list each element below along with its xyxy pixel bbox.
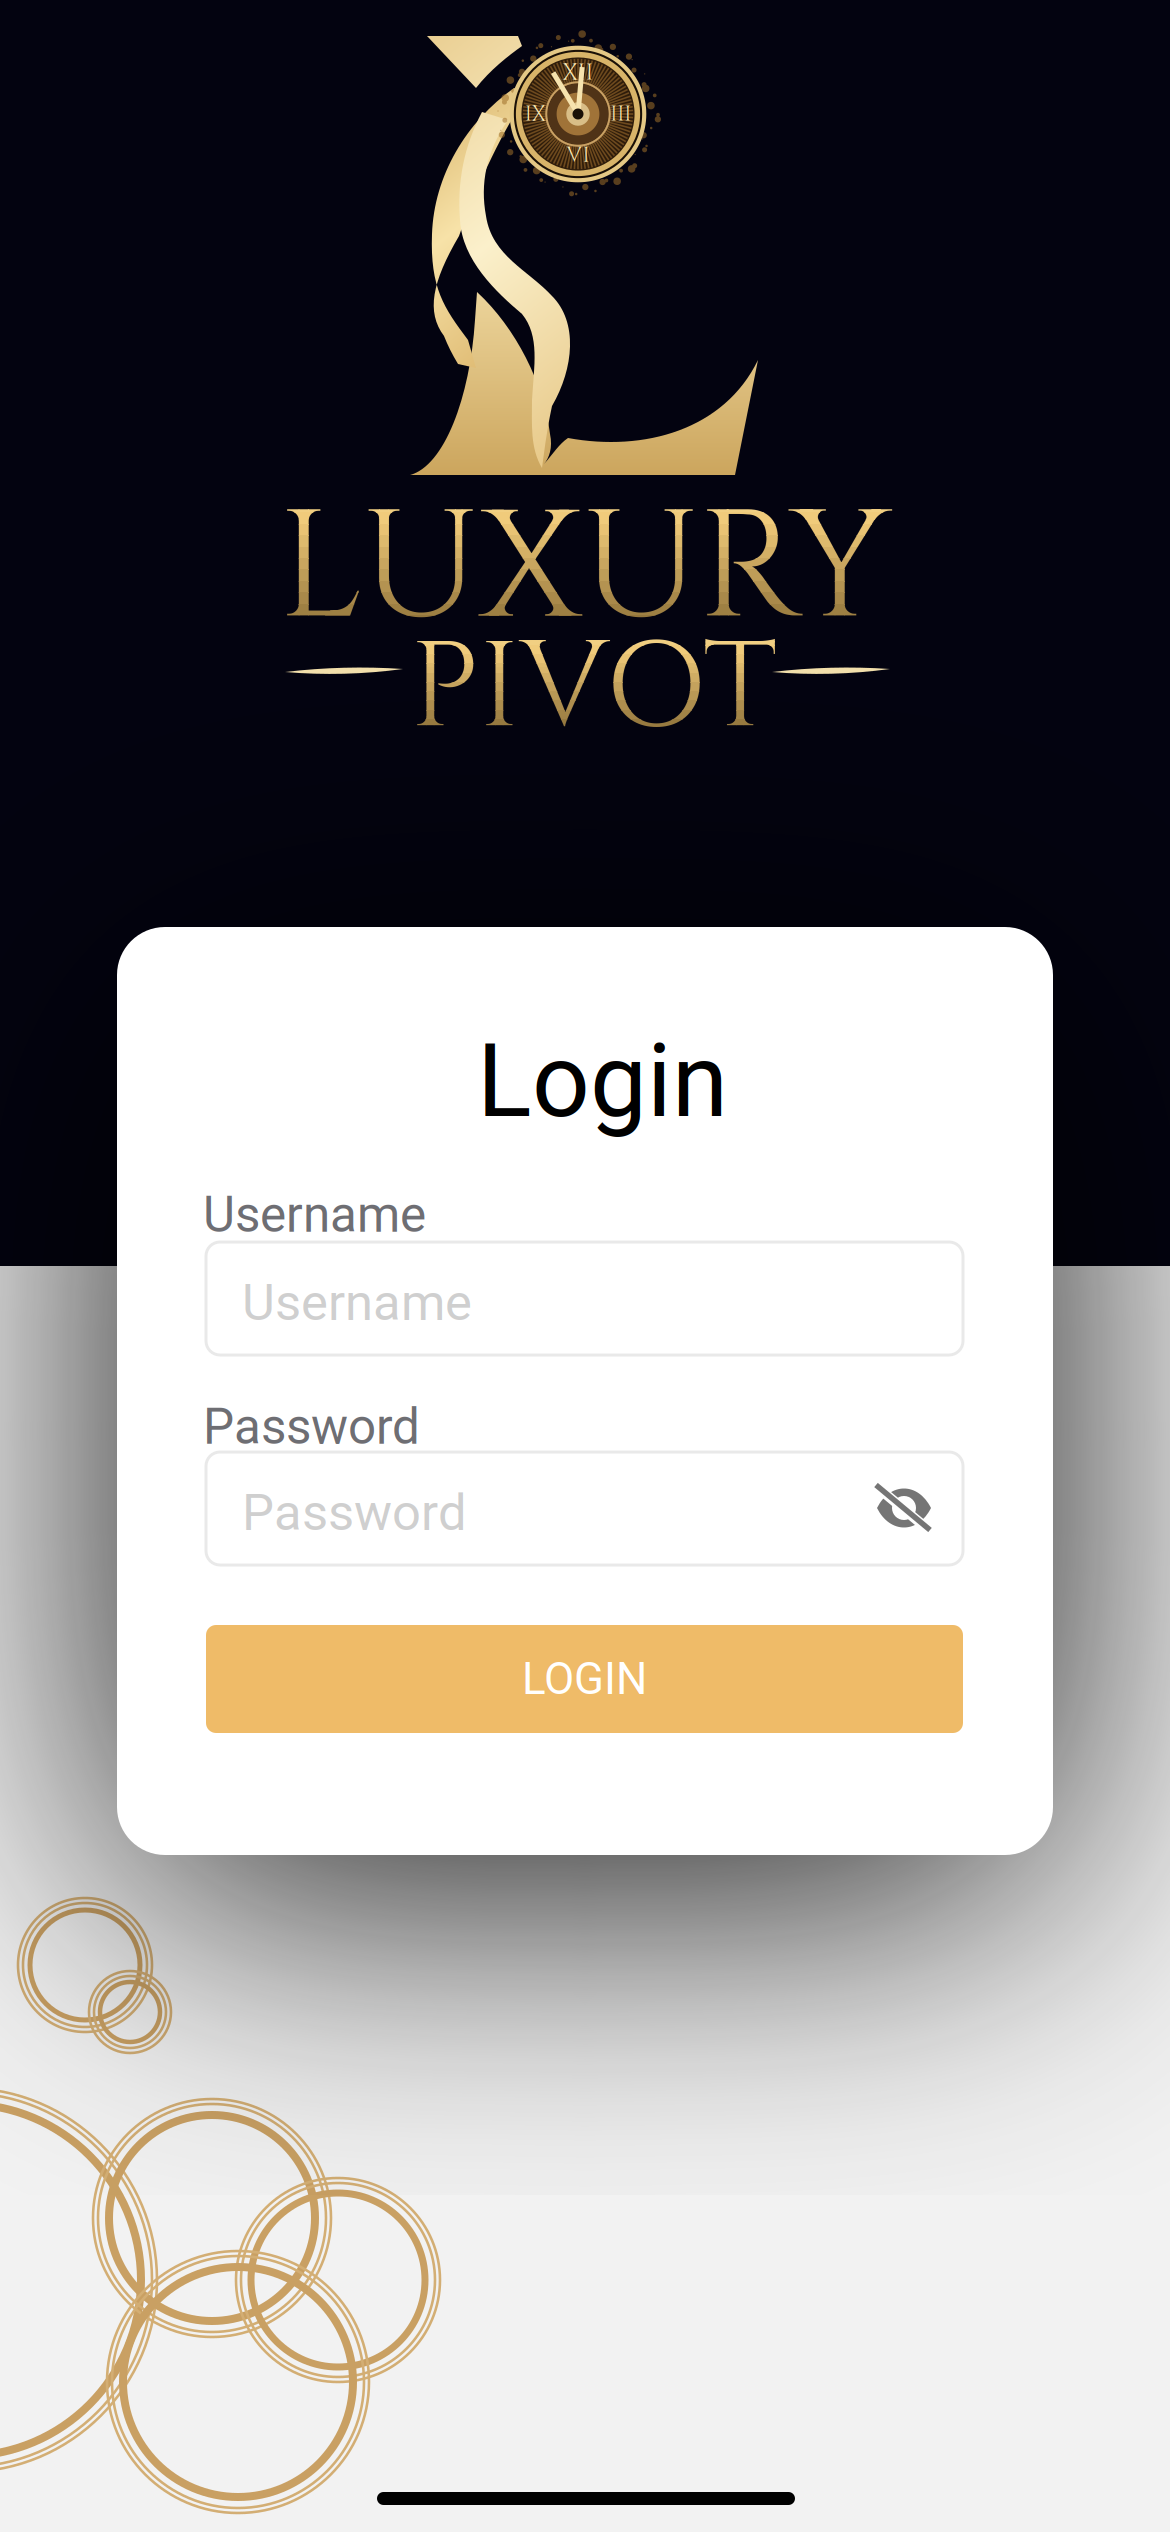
staticText: VI: [566, 141, 589, 170]
staticText: LUXURY: [278, 467, 890, 672]
staticText: III: [610, 100, 631, 128]
staticText: LUXURY: [278, 467, 890, 672]
staticText: LUXURY: [278, 467, 890, 672]
staticText: LUXURY: [278, 467, 890, 672]
staticText: PIVOT: [410, 608, 777, 770]
staticText: LUXURY: [278, 467, 890, 672]
staticText: LUXURY: [278, 467, 890, 672]
staticText: LUXURY: [278, 467, 890, 672]
staticText: Login: [477, 1022, 728, 1141]
staticText: LUXURY: [278, 467, 890, 672]
staticText: LUXURY: [278, 467, 890, 672]
staticText: LOGIN: [522, 1653, 647, 1705]
staticText: PIVOT: [410, 608, 777, 770]
staticText: LUXURY: [278, 467, 890, 672]
staticText: LUXURY: [278, 467, 890, 672]
staticText: PIVOT: [410, 608, 777, 770]
staticText: XII: [562, 57, 593, 88]
staticText: LUXURY: [278, 467, 890, 672]
staticText: PIVOT: [410, 608, 777, 770]
staticText: Username: [242, 1273, 472, 1332]
staticText: PIVOT: [410, 608, 777, 770]
staticText: PIVOT: [410, 608, 777, 770]
button[interactable]: LOGIN: [206, 1625, 963, 1733]
staticText: Password: [203, 1398, 420, 1456]
staticText: Username: [203, 1186, 426, 1244]
staticText: LUXURY: [278, 467, 890, 672]
staticText: PIVOT: [410, 608, 777, 770]
staticText: PIVOT: [410, 608, 777, 770]
staticText: PIVOT: [410, 608, 777, 770]
staticText: PIVOT: [410, 608, 777, 770]
staticText: PIVOT: [410, 608, 777, 770]
staticText: LUXURY: [278, 467, 890, 672]
staticText: IX: [525, 100, 546, 128]
button[interactable]: Show password: [875, 1485, 933, 1531]
staticText: PIVOT: [410, 608, 777, 770]
staticText: PIVOT: [410, 608, 777, 770]
staticText: Password: [242, 1483, 467, 1542]
staticText: PIVOT: [410, 608, 777, 770]
